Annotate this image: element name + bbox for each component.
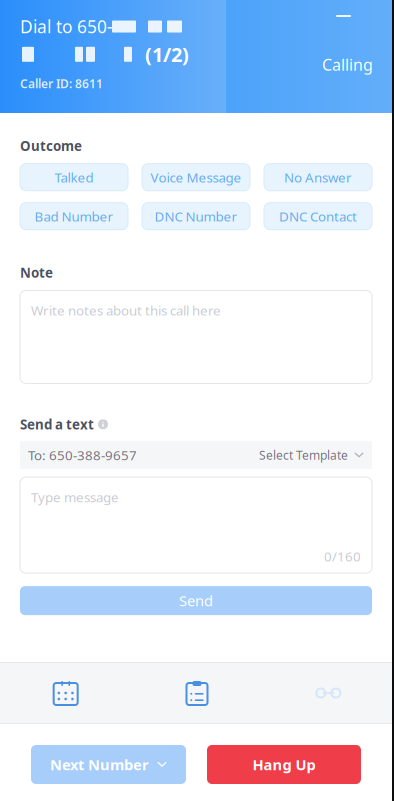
staticText: Hang Up — [252, 755, 315, 774]
button[interactable]: DNC Contact — [264, 203, 372, 230]
button[interactable]: Hang Up — [207, 745, 361, 784]
staticText: Caller ID: 8611 — [20, 76, 103, 91]
button[interactable]: Talked — [20, 164, 128, 191]
button[interactable]: Next Number — [31, 745, 186, 784]
staticText: Send a text — [20, 415, 94, 433]
button[interactable]: Voicemail drop — [263, 662, 394, 724]
staticText: Send — [179, 591, 213, 610]
staticText: Dial to 650- — [20, 15, 113, 38]
button[interactable]: Schedule callback — [0, 662, 131, 724]
staticText: Outcome — [20, 137, 82, 155]
staticText: To: 650-388-9657 — [28, 446, 137, 464]
button[interactable]: Select Template — [259, 447, 364, 463]
staticText: Type message — [31, 488, 119, 506]
staticText: Bad Number — [34, 207, 113, 225]
button[interactable]: Bad Number — [20, 203, 128, 230]
staticText: Calling — [322, 54, 373, 75]
staticText: Write notes about this call here — [31, 301, 221, 319]
staticText: Select Template — [259, 447, 348, 463]
staticText: Next Number — [50, 755, 149, 774]
button[interactable]: Send — [20, 586, 372, 615]
button[interactable]: No Answer — [264, 164, 372, 191]
staticText: Talked — [54, 168, 93, 186]
button[interactable]: DNC Number — [142, 203, 250, 230]
staticText: (1/2) — [145, 41, 189, 68]
staticText: Voice Message — [150, 168, 241, 186]
staticText: 0/160 — [324, 547, 361, 565]
button[interactable]: Voice Message — [142, 164, 250, 191]
staticText: DNC Number — [154, 207, 237, 225]
staticText: DNC Contact — [279, 207, 357, 225]
button[interactable]: Call script — [131, 662, 263, 724]
staticText: Note — [20, 264, 53, 281]
staticText: No Answer — [284, 168, 352, 186]
